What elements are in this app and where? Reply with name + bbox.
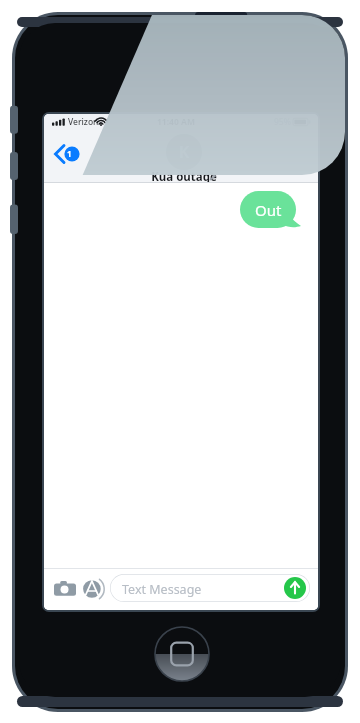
button[interactable]: App Store — [82, 578, 104, 600]
staticText: Verizon — [68, 116, 99, 128]
button[interactable]: Send — [284, 577, 306, 599]
button[interactable]: Out — [240, 191, 302, 228]
staticText: 1 — [67, 148, 72, 159]
button[interactable]: Camera — [53, 579, 77, 599]
button[interactable]: Back, 1 unread — [50, 142, 86, 166]
button[interactable]: K — [139, 132, 229, 182]
button[interactable]: Text Message — [110, 574, 310, 602]
staticText: Out — [255, 200, 282, 220]
staticText: Text Message — [122, 581, 202, 598]
staticText: Kua outage — [151, 169, 217, 182]
